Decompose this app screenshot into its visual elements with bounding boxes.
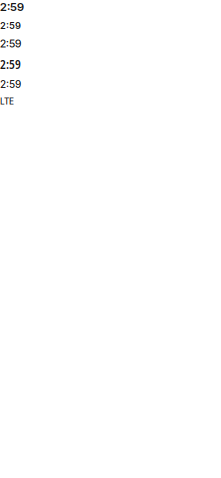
staticText: LTE bbox=[0, 96, 14, 106]
staticText: 2:59 bbox=[0, 0, 24, 14]
staticText: 2:59 bbox=[0, 78, 21, 90]
staticText: 2:59 bbox=[0, 20, 21, 31]
staticText: 2:59 bbox=[0, 56, 21, 72]
staticText: 2:59 bbox=[0, 37, 21, 50]
